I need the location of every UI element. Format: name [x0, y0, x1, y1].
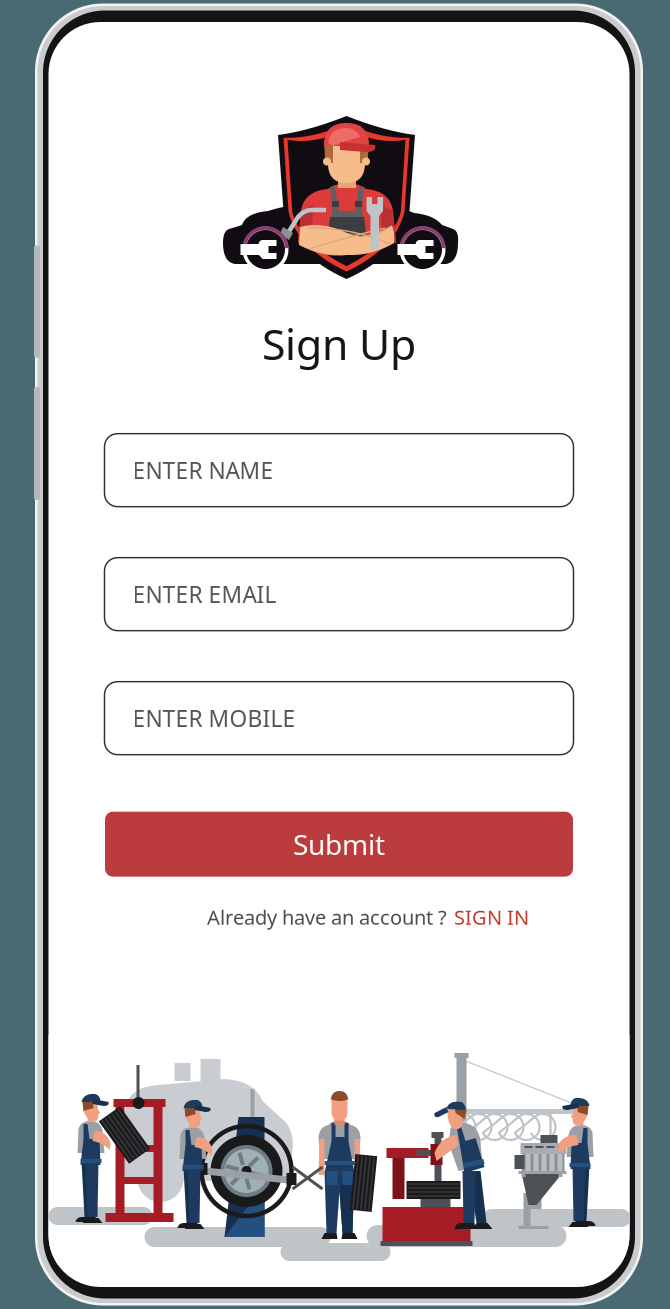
- button[interactable]: Submit: [105, 812, 573, 877]
- button[interactable]: SIGN IN: [454, 904, 529, 930]
- staticText: ENTER MOBILE: [132, 703, 295, 733]
- staticText: Already have an account ?: [207, 904, 447, 930]
- button[interactable]: ENTER MOBILE: [104, 682, 573, 755]
- staticText: ENTER NAME: [132, 455, 273, 485]
- button[interactable]: ENTER NAME: [104, 434, 573, 507]
- button[interactable]: ENTER EMAIL: [104, 558, 573, 631]
- staticText: Submit: [293, 826, 385, 863]
- staticText: SIGN IN: [454, 904, 529, 930]
- staticText: ENTER EMAIL: [132, 579, 276, 609]
- staticText: Sign Up: [262, 315, 416, 372]
